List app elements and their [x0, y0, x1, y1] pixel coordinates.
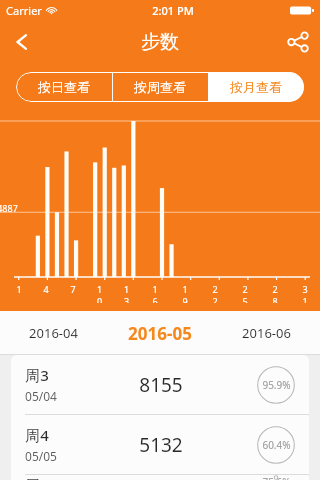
staticText: 4 — [43, 283, 49, 295]
staticText: 16 — [150, 283, 160, 303]
button[interactable]: 2016-04 — [0, 311, 106, 355]
staticText: 10 — [95, 283, 104, 303]
button[interactable]: 按月查看 — [208, 72, 304, 102]
staticText: 75.6% — [262, 475, 291, 480]
staticText: 2016-04 — [29, 324, 78, 342]
button[interactable]: Share — [276, 20, 320, 64]
staticText: 5132 — [139, 432, 183, 458]
staticText: 8155 — [139, 372, 183, 398]
staticText: 28 — [270, 283, 280, 303]
button[interactable]: 按周查看 — [112, 72, 208, 102]
staticText: 31 — [300, 283, 310, 303]
staticText: 19 — [180, 283, 190, 303]
button[interactable]: 按日查看 — [16, 72, 112, 102]
button[interactable]: Back — [0, 20, 44, 64]
staticText: Carrier — [6, 3, 42, 18]
button[interactable]: 周3 — [11, 355, 309, 414]
staticText: 1 — [16, 283, 22, 295]
staticText: 2016-05 — [128, 322, 192, 345]
staticText: 周3 — [25, 365, 49, 385]
staticText: 按月查看 — [230, 79, 282, 95]
staticText: 05/04 — [25, 388, 57, 404]
staticText: 22 — [210, 283, 220, 303]
staticText: 4887 — [0, 202, 18, 214]
staticText: 步数 — [141, 30, 179, 54]
staticText: 25 — [240, 283, 250, 303]
staticText: 95.9% — [262, 378, 291, 392]
button[interactable]: 2016-05 — [106, 311, 213, 355]
button[interactable]: 周4 — [11, 415, 309, 474]
staticText: 周5 — [25, 475, 49, 480]
staticText: 05/05 — [25, 448, 57, 464]
button[interactable]: 2016-06 — [213, 311, 320, 355]
staticText: 60.4% — [262, 438, 291, 452]
staticText: 7 — [70, 283, 76, 295]
staticText: 2:01 PM — [152, 3, 194, 18]
staticText: 按周查看 — [134, 79, 186, 95]
staticText: 按日查看 — [38, 79, 90, 95]
button[interactable]: 周5 — [11, 475, 309, 480]
staticText: 13 — [122, 283, 131, 303]
staticText: 周4 — [25, 425, 49, 445]
staticText: 2016-06 — [242, 324, 291, 342]
